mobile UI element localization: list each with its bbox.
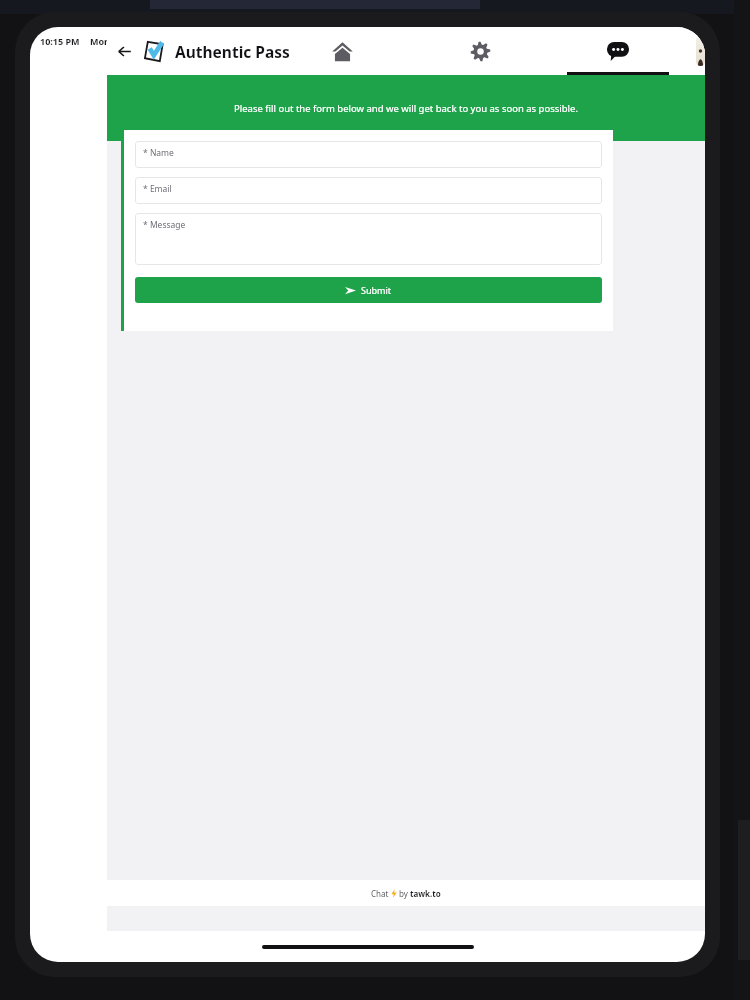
staticText: Submit (361, 284, 392, 296)
button[interactable]: * Name (135, 141, 602, 168)
button[interactable]: Back (107, 34, 141, 68)
staticText: by (397, 888, 410, 899)
button[interactable]: Chat (566, 27, 670, 75)
staticText: Please fill out the form below and we wi… (234, 102, 578, 115)
staticText: Chat (371, 888, 391, 899)
staticText: Authentic Pass (175, 41, 290, 62)
button[interactable]: Home (290, 27, 394, 75)
button[interactable]: * Message (135, 213, 602, 265)
staticText: 10:15 PM (40, 35, 80, 47)
staticText: tawk.to (410, 888, 441, 899)
button[interactable]: Settings (428, 27, 532, 75)
button[interactable]: Chat (107, 880, 705, 906)
staticText: Mon Dec 20 (90, 35, 142, 47)
button[interactable]: Submit (135, 277, 602, 303)
button[interactable]: Profile (696, 36, 705, 66)
staticText: * Name (143, 147, 174, 159)
staticText: * Email (143, 183, 172, 195)
staticText: * Message (143, 219, 186, 231)
button[interactable]: * Email (135, 177, 602, 204)
